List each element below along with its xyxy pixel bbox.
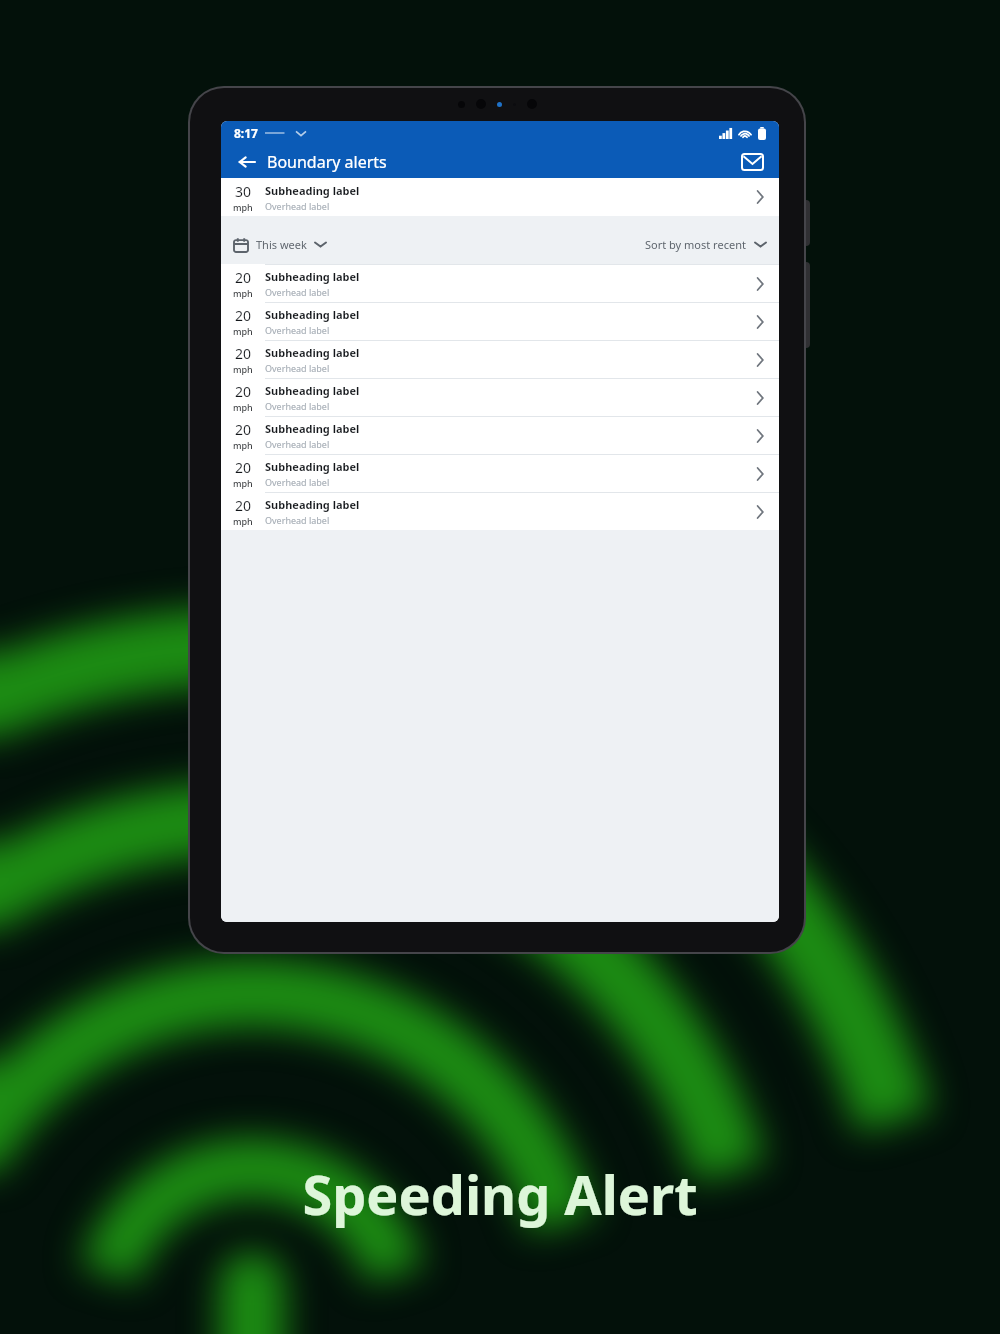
staticText: Subheading label <box>265 383 360 398</box>
button[interactable]: 20 <box>221 416 779 454</box>
staticText: mph <box>233 477 253 489</box>
button[interactable]: Messages <box>736 145 769 178</box>
staticText: Overhead label <box>265 324 330 336</box>
staticText: 20 <box>235 344 252 363</box>
button[interactable]: 20 <box>221 340 779 378</box>
staticText: mph <box>233 439 253 451</box>
button[interactable]: 20 <box>221 302 779 340</box>
button[interactable]: Back <box>231 147 261 177</box>
staticText: Subheading label <box>265 345 360 360</box>
staticText: Overhead label <box>265 286 330 298</box>
staticText: Boundary alerts <box>267 151 387 173</box>
staticText: Overhead label <box>265 476 330 488</box>
button[interactable]: This week <box>234 237 326 252</box>
staticText: Subheading label <box>265 269 360 284</box>
staticText: Sort by most recent <box>645 237 746 252</box>
staticText: 20 <box>235 496 252 515</box>
staticText: 30 <box>235 182 252 201</box>
staticText: mph <box>233 201 253 213</box>
button[interactable]: 20 <box>221 264 779 302</box>
button[interactable]: Sort by most recent <box>645 237 766 252</box>
staticText: 20 <box>235 306 252 325</box>
staticText: 20 <box>235 382 252 401</box>
staticText: 8:17 <box>234 125 258 141</box>
staticText: Subheading label <box>265 183 360 198</box>
staticText: mph <box>233 363 253 375</box>
button[interactable]: 20 <box>221 454 779 492</box>
staticText: Overhead label <box>265 514 330 526</box>
staticText: Subheading label <box>265 459 360 474</box>
staticText: 20 <box>235 420 252 439</box>
staticText: Subheading label <box>265 421 360 436</box>
staticText: 20 <box>235 268 252 287</box>
staticText: mph <box>233 287 253 299</box>
staticText: This week <box>256 237 307 252</box>
staticText: Subheading label <box>265 307 360 322</box>
staticText: Overhead label <box>265 400 330 412</box>
staticText: 20 <box>235 458 252 477</box>
staticText: Speeding Alert <box>0 1157 1000 1231</box>
button[interactable]: 20 <box>221 378 779 416</box>
staticText: mph <box>233 325 253 337</box>
button[interactable]: 20 <box>221 492 779 530</box>
staticText: Overhead label <box>265 362 330 374</box>
staticText: Subheading label <box>265 497 360 512</box>
staticText: Overhead label <box>265 200 330 212</box>
staticText: Overhead label <box>265 438 330 450</box>
button[interactable]: 30 <box>221 178 779 216</box>
staticText: mph <box>233 515 253 527</box>
staticText: mph <box>233 401 253 413</box>
